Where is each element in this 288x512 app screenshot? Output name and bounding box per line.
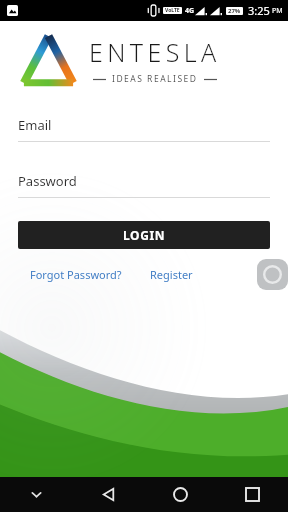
staticText: 4G xyxy=(185,6,195,16)
staticText: 27% xyxy=(228,7,241,15)
staticText: LOGIN xyxy=(123,227,166,243)
staticText: Email xyxy=(18,116,52,134)
button[interactable]: Email xyxy=(18,116,270,142)
staticText: VoLTE xyxy=(165,7,180,14)
staticText: Forgot Password? xyxy=(30,267,122,282)
staticText: Password xyxy=(18,172,77,190)
button[interactable]: Home xyxy=(144,477,216,512)
button[interactable]: Recent apps xyxy=(216,477,288,512)
staticText: PM xyxy=(272,6,283,16)
staticText: Register xyxy=(150,267,193,282)
button[interactable]: LOGIN xyxy=(18,221,270,249)
button[interactable]: Back xyxy=(72,477,144,512)
staticText: 3:25 xyxy=(248,3,270,18)
button[interactable]: Accessibility menu xyxy=(257,259,288,290)
button[interactable]: Hide keyboard xyxy=(0,477,72,512)
button[interactable]: Register xyxy=(150,267,193,282)
button[interactable]: Forgot Password? xyxy=(30,267,122,282)
button[interactable]: Password xyxy=(18,172,270,198)
staticText: ENTESLA xyxy=(89,35,221,69)
staticText: IDEAS REALISED xyxy=(112,73,198,85)
